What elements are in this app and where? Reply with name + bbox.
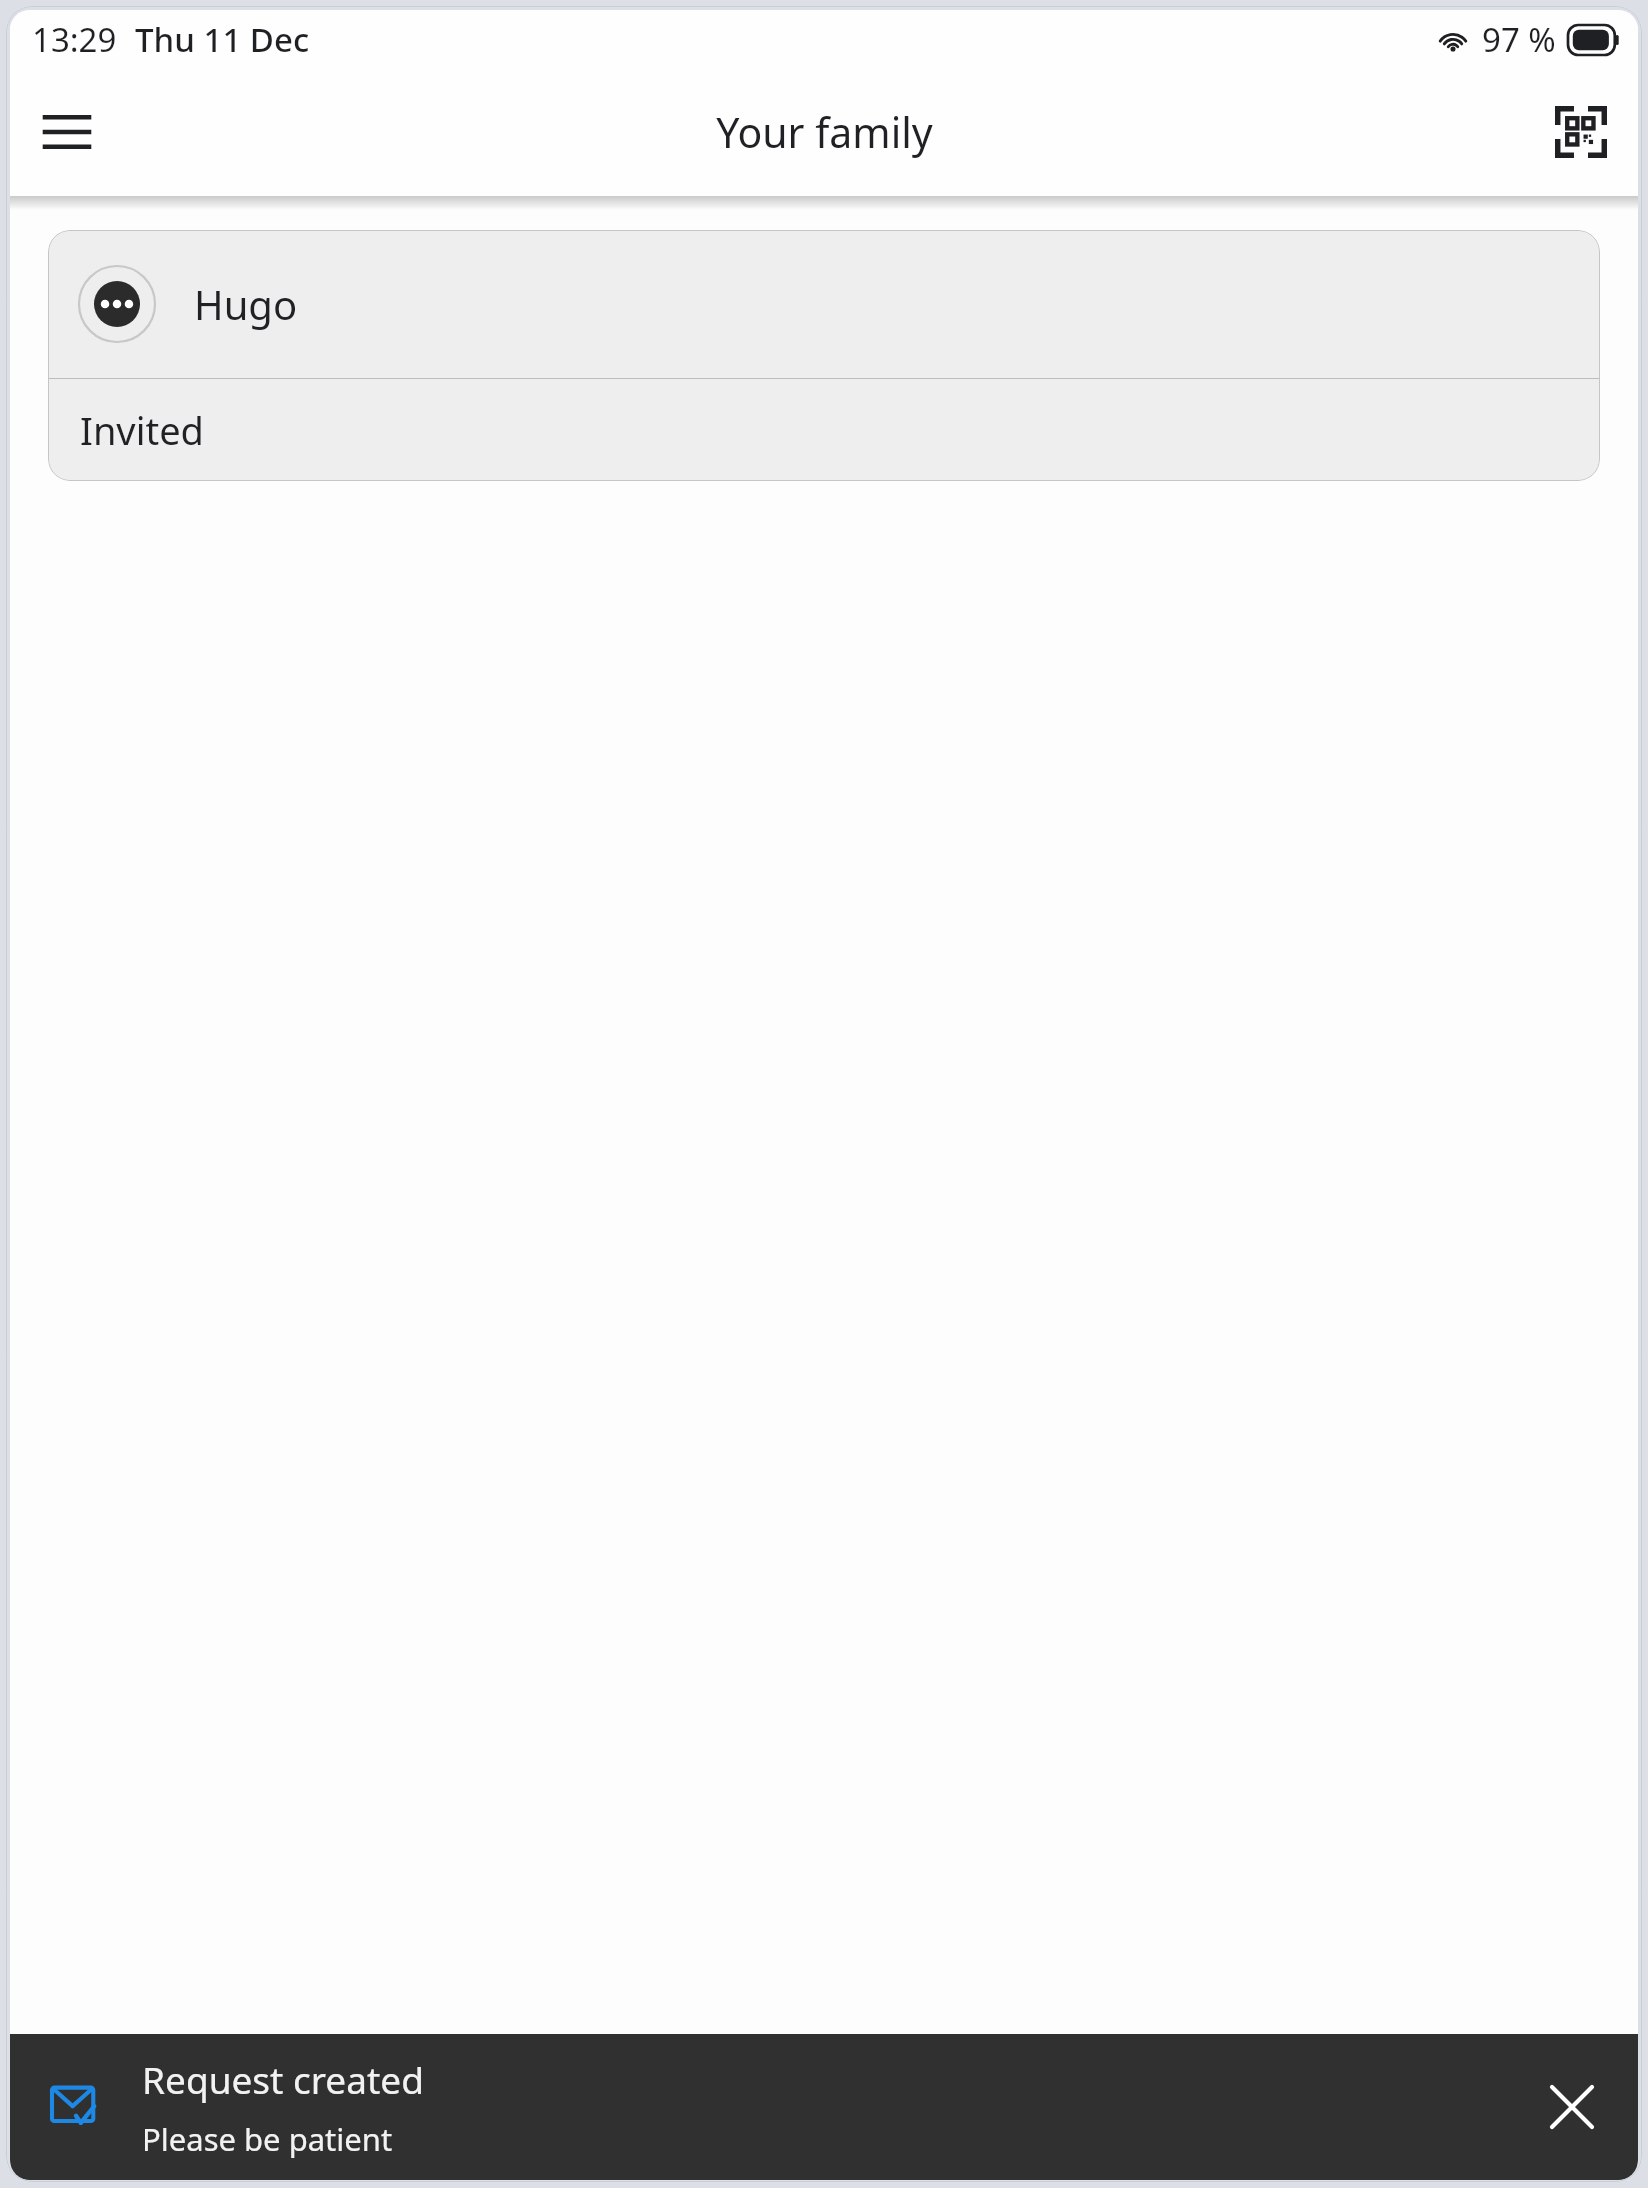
button[interactable]: Open navigation menu xyxy=(24,89,110,175)
staticText: Invited xyxy=(80,404,204,456)
button[interactable]: Scan QR code xyxy=(1538,89,1624,175)
staticText: 13:29 xyxy=(32,17,117,62)
button[interactable]: Dismiss notification xyxy=(1526,2061,1618,2153)
staticText: Request created xyxy=(142,2054,424,2104)
staticText: Your family xyxy=(716,104,933,160)
staticText: Thu 11 Dec xyxy=(135,17,310,62)
staticText: Please be patient xyxy=(142,2118,393,2160)
staticText: 97 % xyxy=(1482,17,1556,62)
button[interactable]: Hugo xyxy=(48,230,1600,378)
button[interactable]: Invited xyxy=(48,379,1600,481)
staticText: Hugo xyxy=(194,277,298,331)
